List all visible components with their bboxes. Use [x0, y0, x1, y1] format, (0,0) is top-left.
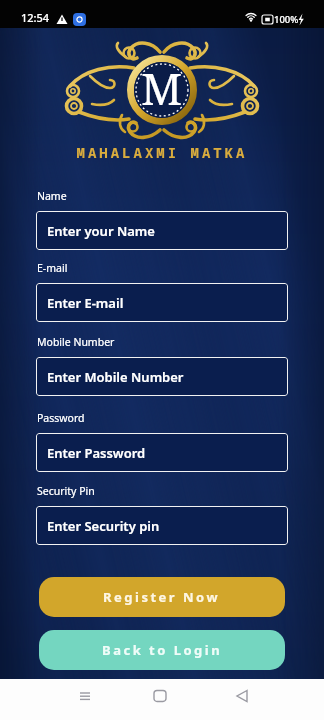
staticText: Enter Password	[47, 444, 146, 462]
button[interactable]: Back to Login	[39, 630, 285, 670]
staticText: Back to Login	[102, 641, 223, 659]
staticText: Name	[37, 189, 67, 203]
button[interactable]: Enter Mobile Number	[36, 357, 288, 396]
button[interactable]: Enter E-mail	[36, 283, 288, 322]
button[interactable]: Register Now	[39, 577, 285, 617]
button[interactable]	[216, 679, 324, 720]
staticText: Security Pin	[37, 484, 95, 498]
button[interactable]	[0, 679, 108, 720]
staticText: 100%	[274, 13, 299, 26]
staticText: 12:54	[21, 10, 50, 25]
staticText: Enter E-mail	[47, 294, 124, 312]
button[interactable]: Enter Security pin	[36, 506, 288, 545]
staticText: Enter your Name	[47, 222, 155, 240]
staticText: Register Now	[103, 588, 221, 606]
button[interactable]: Enter your Name	[36, 211, 288, 250]
button[interactable]	[108, 679, 216, 720]
staticText: Enter Security pin	[47, 517, 160, 535]
staticText: Mobile Number	[37, 335, 115, 349]
staticText: Password	[37, 411, 85, 425]
button[interactable]: Enter Password	[36, 433, 288, 472]
staticText: E-mail	[37, 261, 68, 275]
staticText: M	[141, 58, 183, 118]
staticText: MAHALAXMI MATKA	[0, 143, 324, 162]
staticText: Enter Mobile Number	[47, 368, 184, 386]
